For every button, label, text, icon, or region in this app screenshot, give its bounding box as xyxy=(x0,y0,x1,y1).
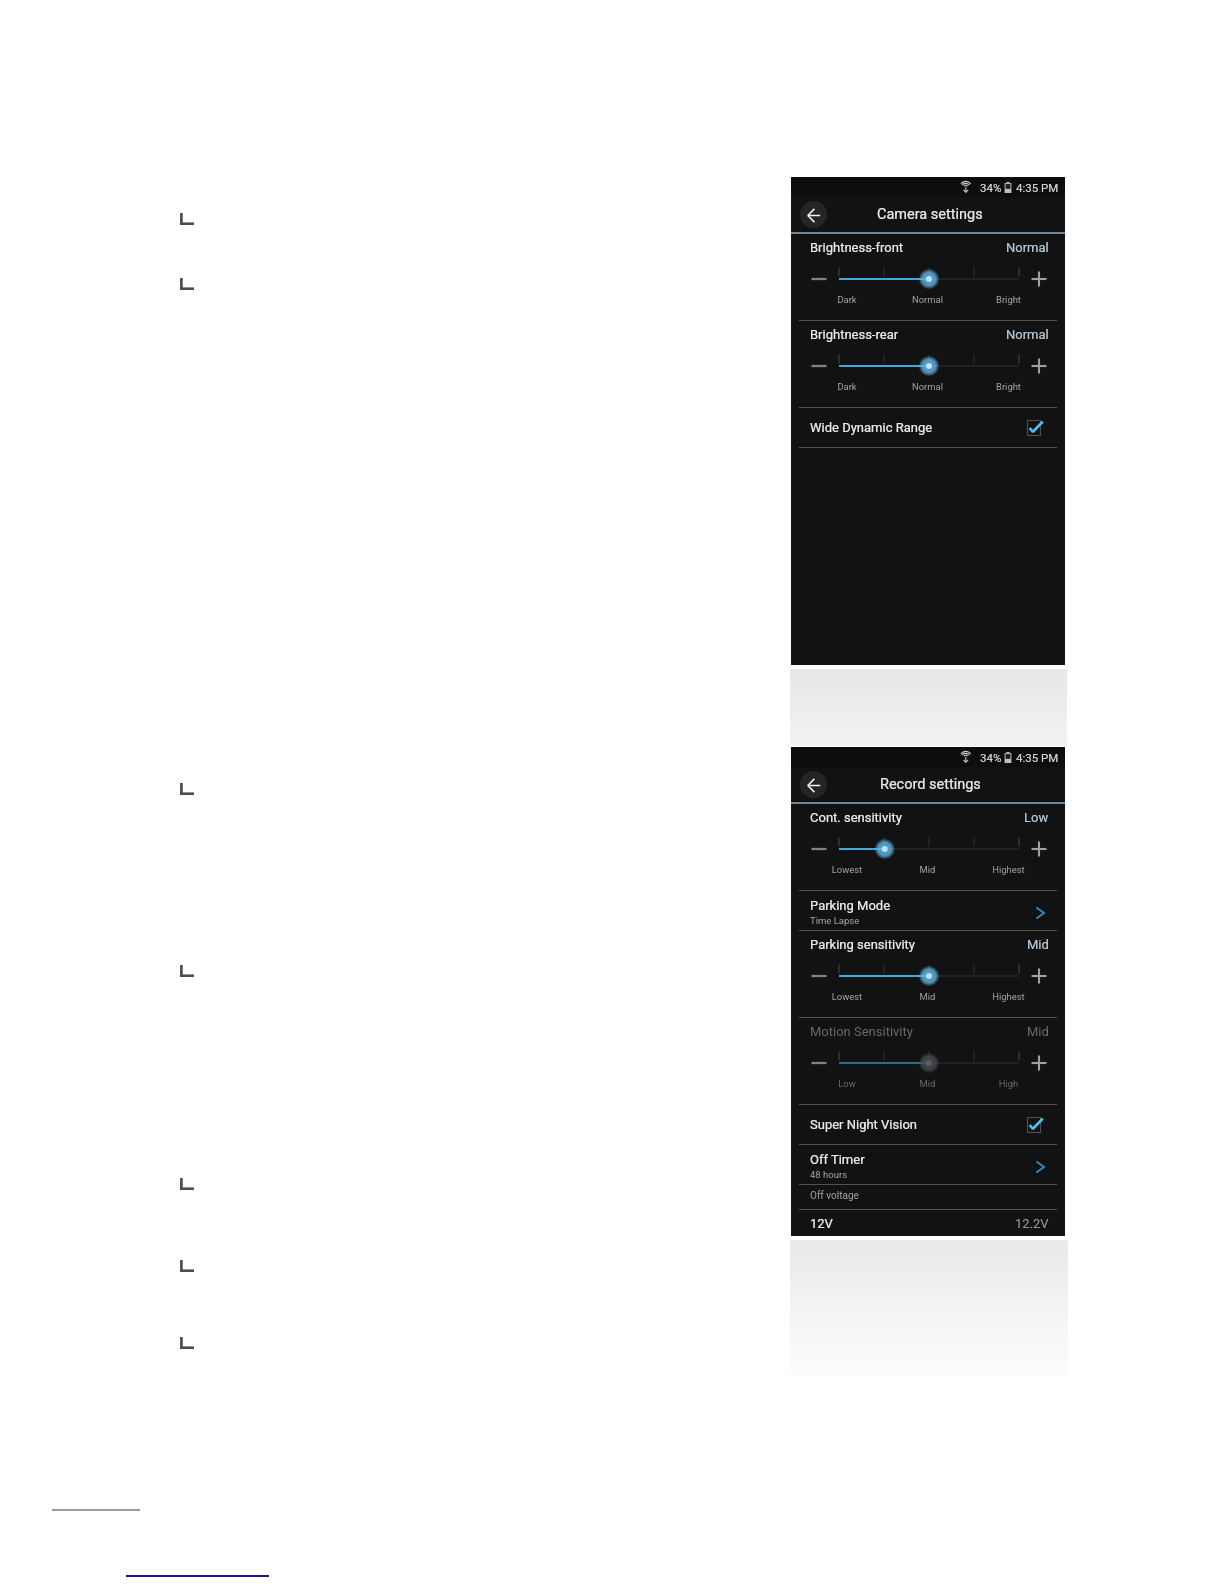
staticText: Mid xyxy=(1027,937,1049,952)
staticText: Highest xyxy=(968,864,1049,875)
button[interactable]: Cont. sensitivity xyxy=(791,804,1065,890)
button[interactable]: Increase xyxy=(1027,349,1053,375)
staticText: 4:35 PM xyxy=(1016,181,1059,194)
button[interactable]: Decrease xyxy=(807,959,832,985)
staticText: Low xyxy=(1024,810,1049,825)
button[interactable]: Parking sensitivity xyxy=(791,931,1065,1017)
button[interactable]: Decrease xyxy=(807,349,832,375)
staticText: Parking Mode xyxy=(810,898,891,913)
staticText: Dark xyxy=(807,294,887,305)
staticText: 4:35 PM xyxy=(1016,751,1059,764)
button[interactable]: Off voltage xyxy=(791,1185,1065,1209)
staticText: Off voltage xyxy=(810,1190,859,1202)
staticText: Highest xyxy=(968,991,1049,1002)
staticText: 12.2V xyxy=(1015,1216,1049,1231)
button[interactable]: Super Night Vision xyxy=(791,1105,1065,1144)
button[interactable]: Back xyxy=(800,771,827,798)
button[interactable]: 12V xyxy=(791,1210,1065,1236)
staticText: Mid xyxy=(887,864,968,875)
button[interactable]: Wide Dynamic Range xyxy=(791,408,1065,447)
staticText: 12V xyxy=(810,1216,1015,1231)
staticText: Dark xyxy=(807,381,887,392)
staticText: Normal xyxy=(887,294,968,305)
button[interactable]: Brightness-rear xyxy=(791,321,1065,407)
staticText: Lowest xyxy=(807,864,887,875)
staticText: Wide Dynamic Range xyxy=(810,420,1027,435)
button[interactable]: Increase xyxy=(1027,1046,1053,1072)
staticText: Parking sensitivity xyxy=(810,937,1027,952)
button[interactable]: Decrease xyxy=(807,832,832,858)
staticText: High xyxy=(968,1078,1049,1089)
staticText: Bright xyxy=(968,294,1049,305)
staticText: Normal xyxy=(887,381,968,392)
button[interactable]: Decrease xyxy=(807,262,832,288)
staticText: Bright xyxy=(968,381,1049,392)
button[interactable]: Motion Sensitivity xyxy=(791,1018,1065,1104)
staticText: Cont. sensitivity xyxy=(810,810,1024,825)
staticText: Normal xyxy=(1006,240,1049,255)
button[interactable]: Off Timer xyxy=(791,1145,1065,1184)
button[interactable]: Brightness-front xyxy=(791,234,1065,320)
button[interactable]: Back xyxy=(800,201,827,228)
staticText: Mid xyxy=(887,1078,968,1089)
staticText: Mid xyxy=(887,991,968,1002)
staticText: Brightness-front xyxy=(810,240,1006,255)
staticText: Low xyxy=(807,1078,887,1089)
button[interactable]: Increase xyxy=(1027,959,1053,985)
staticText: Brightness-rear xyxy=(810,327,1006,342)
staticText: Camera settings xyxy=(877,206,983,223)
staticText: 48 hours xyxy=(810,1169,848,1180)
staticText: Off Timer xyxy=(810,1152,865,1167)
button[interactable]: Parking Mode xyxy=(791,891,1065,930)
button[interactable]: Decrease xyxy=(807,1046,832,1072)
staticText: Mid xyxy=(1027,1024,1049,1039)
button[interactable]: Increase xyxy=(1027,832,1053,858)
staticText: Normal xyxy=(1006,327,1049,342)
staticText: 34% xyxy=(980,181,1002,194)
staticText: Time Lapse xyxy=(810,915,860,926)
staticText: Record settings xyxy=(880,776,981,793)
staticText: Lowest xyxy=(807,991,887,1002)
staticText: 34% xyxy=(980,751,1002,764)
button[interactable]: Increase xyxy=(1027,262,1053,288)
staticText: Motion Sensitivity xyxy=(810,1024,1027,1039)
staticText: Super Night Vision xyxy=(810,1117,1027,1132)
